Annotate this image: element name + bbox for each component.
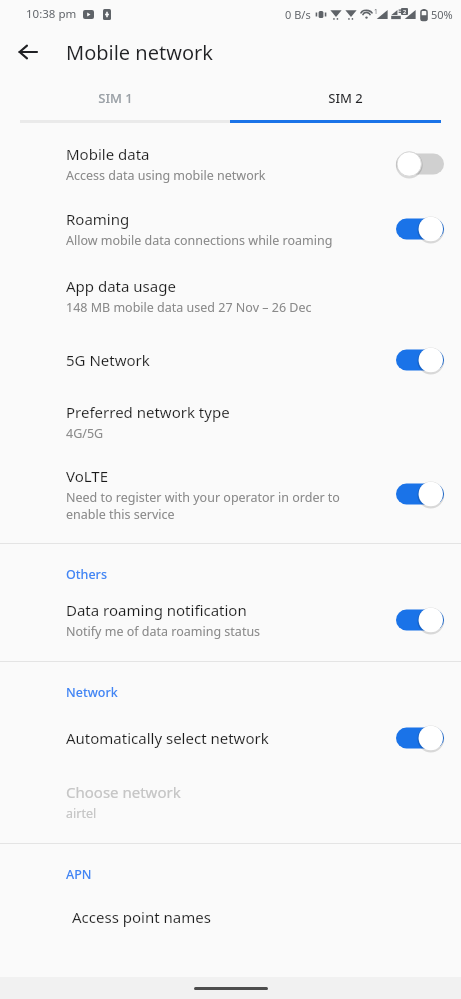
staticText: SIM 2 [328,89,363,107]
staticText: Need to register with your operator in o… [66,489,340,522]
button[interactable]: Preferred network type [0,389,461,455]
staticText: 148 MB mobile data used 27 Nov – 26 Dec [66,299,312,316]
staticText: 0 B/s [285,7,311,22]
button[interactable]: Roaming [0,196,461,261]
button[interactable]: App data usage [0,261,461,331]
staticText: VoLTE [66,466,109,486]
button[interactable]: Back [8,32,48,72]
staticText: Notify me of data roaming status [66,623,261,640]
staticText: APN [66,866,92,883]
staticText: 50% [431,7,453,22]
button[interactable]: Switch on [395,723,445,753]
button[interactable]: Switch on [395,479,445,509]
staticText: Allow mobile data connections while roam… [66,232,333,249]
staticText: 1 [374,7,378,16]
button[interactable]: Choose network [0,769,461,835]
staticText: Roaming [66,209,130,229]
button[interactable]: Switch off [395,149,445,179]
staticText: Automatically select network [66,728,269,748]
staticText: SIM 1 [98,89,133,107]
button[interactable]: VoLTE [0,455,461,533]
staticText: 5G Network [66,350,150,370]
staticText: 4G/5G [66,425,104,442]
staticText: Network [66,684,118,701]
staticText: airtel [66,805,97,822]
staticText: App data usage [66,276,176,296]
button[interactable]: Data roaming notification [0,589,461,651]
staticText: Mobile data [66,144,150,164]
staticText: Access point names [72,907,211,927]
staticText: Mobile network [66,39,213,66]
staticText: 10:38 pm [26,6,77,22]
button[interactable]: SIM 1 [0,76,230,120]
staticText: Access data using mobile network [66,167,266,184]
button[interactable]: Mobile data [0,131,461,196]
staticText: 2 [403,8,407,15]
button[interactable]: 5G Network [0,331,461,389]
staticText: Data roaming notification [66,600,247,620]
button[interactable]: SIM 2 [230,76,461,120]
staticText: Choose network [66,782,181,802]
button[interactable]: Automatically select network [0,707,461,769]
button[interactable]: Access point names [0,889,461,945]
button[interactable]: Switch on [395,605,445,635]
button[interactable]: Switch on [395,345,445,375]
staticText: Preferred network type [66,402,230,422]
button[interactable]: Switch on [395,214,445,244]
staticText: Others [66,566,107,583]
